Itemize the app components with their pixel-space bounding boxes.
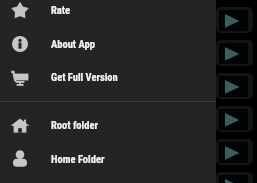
staticText: About App [51, 38, 95, 50]
staticText: Rate [51, 4, 71, 16]
button[interactable]: Play [216, 7, 253, 33]
button[interactable]: Play [216, 139, 253, 165]
staticText: Home Folder [51, 153, 105, 165]
staticText: Get Full Version [51, 71, 118, 83]
button[interactable]: Play [216, 40, 253, 66]
button[interactable]: Get Full Version [0, 60, 216, 93]
button[interactable]: Rate [0, 0, 216, 26]
staticText: Root folder [51, 119, 98, 131]
button[interactable]: Home Folder [0, 142, 216, 175]
button[interactable]: Root folder [0, 108, 216, 141]
button[interactable]: Play [216, 106, 253, 132]
button[interactable]: Play [216, 172, 253, 183]
button[interactable]: About App [0, 27, 216, 60]
button[interactable]: Play [216, 73, 253, 99]
